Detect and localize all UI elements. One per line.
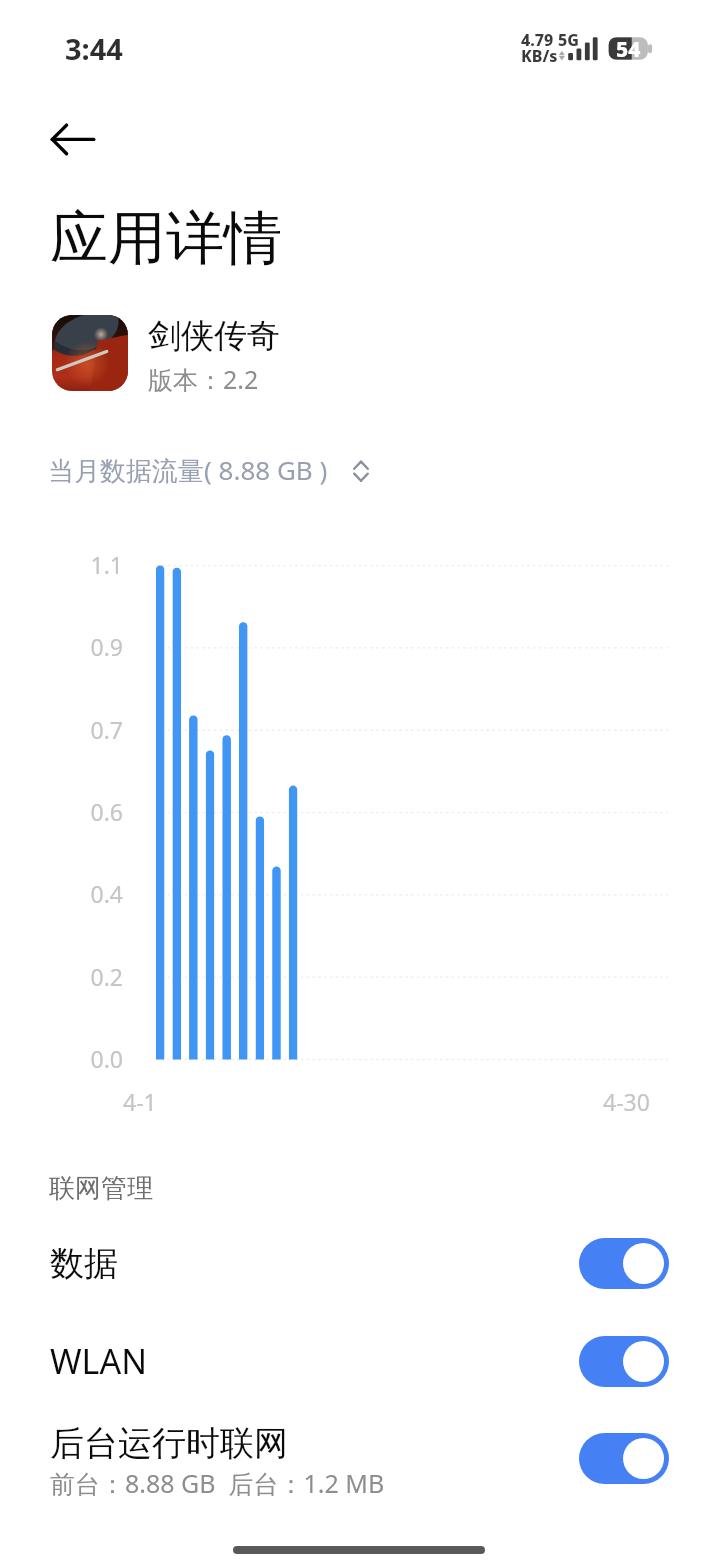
staticText: 数据: [50, 1242, 118, 1285]
button[interactable]: 后台运行时联网: [0, 1412, 720, 1504]
staticText: 0.2: [63, 961, 123, 992]
staticText: KB/s: [521, 45, 558, 67]
button[interactable]: WLAN: [579, 1336, 669, 1387]
staticText: 0.9: [63, 631, 123, 662]
staticText: 0.0: [63, 1043, 123, 1074]
staticText: 后台运行时联网: [50, 1422, 288, 1465]
button[interactable]: 数据: [0, 1227, 720, 1299]
staticText: 当月数据流量( 8.88 GB ): [48, 452, 328, 488]
staticText: 3:44: [65, 29, 123, 68]
staticText: 0.6: [63, 796, 123, 827]
button[interactable]: 数据: [579, 1238, 669, 1289]
staticText: 4-1: [123, 1086, 157, 1117]
staticText: 联网管理: [49, 1172, 153, 1205]
staticText: 应用详情: [50, 202, 282, 275]
staticText: 4-30: [603, 1086, 650, 1117]
button[interactable]: 后台运行时联网: [579, 1433, 669, 1484]
staticText: 1.1: [63, 549, 123, 580]
button[interactable]: WLAN: [0, 1325, 720, 1397]
staticText: 0.4: [63, 878, 123, 909]
staticText: 剑侠传奇: [148, 315, 280, 357]
button[interactable]: 剑侠传奇: [0, 309, 720, 397]
staticText: 版本：2.2: [148, 362, 259, 396]
button[interactable]: Back: [37, 106, 109, 178]
staticText: 4.79: [521, 29, 554, 51]
staticText: 前台：8.88 GB 后台：1.2 MB: [50, 1466, 385, 1500]
staticText: 0.7: [63, 714, 123, 745]
staticText: 54: [616, 35, 641, 63]
staticText: 5G: [558, 29, 579, 51]
staticText: WLAN: [50, 1338, 148, 1384]
button[interactable]: 当月数据流量( 8.88 GB ): [36, 446, 384, 496]
